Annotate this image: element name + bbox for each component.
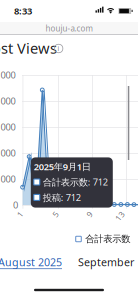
staticText: 2025年9月1日 bbox=[34, 160, 91, 173]
button[interactable]: About post views bbox=[54, 44, 63, 53]
button[interactable]: August 2025 bbox=[0, 255, 62, 269]
staticText: August 2025 bbox=[0, 255, 62, 269]
staticText: 1 bbox=[17, 209, 22, 219]
staticText: 0 bbox=[13, 199, 18, 211]
staticText: 投稿: 712 bbox=[43, 191, 81, 204]
button[interactable]: houju-a.com bbox=[0, 22, 138, 35]
staticText: 000 bbox=[0, 121, 15, 133]
staticText: 合計表示数 bbox=[85, 233, 130, 245]
staticText: 000 bbox=[0, 147, 15, 159]
staticText: houju-a.com bbox=[45, 23, 92, 34]
staticText: 000 bbox=[0, 95, 15, 107]
staticText: ost Views bbox=[0, 38, 57, 58]
button[interactable]: 合計表示数 bbox=[76, 233, 130, 245]
staticText: 8:33 bbox=[14, 5, 32, 17]
staticText: 5 bbox=[53, 209, 58, 219]
staticText: 9 bbox=[87, 209, 92, 219]
staticText: September bbox=[78, 255, 134, 269]
staticText: 000 bbox=[0, 173, 15, 185]
button[interactable]: September bbox=[78, 255, 134, 269]
staticText: 13 bbox=[115, 211, 125, 221]
staticText: 000 bbox=[0, 69, 15, 81]
staticText: i bbox=[58, 44, 60, 53]
staticText: 合計表示数: 712 bbox=[43, 176, 108, 188]
